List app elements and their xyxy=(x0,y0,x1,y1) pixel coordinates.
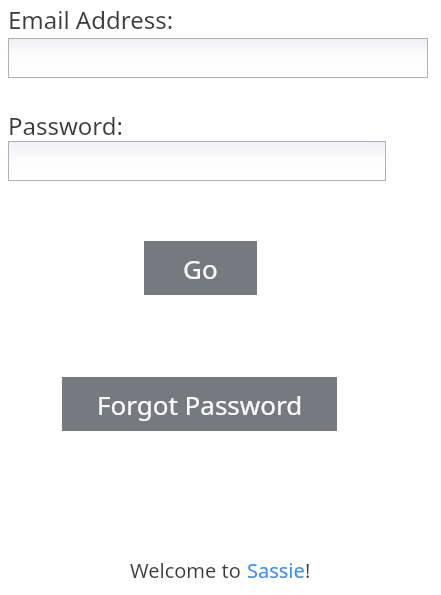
staticText: Password: xyxy=(8,109,123,142)
button[interactable]: Go xyxy=(144,241,257,295)
staticText: Forgot Password xyxy=(97,387,303,422)
button[interactable] xyxy=(8,141,386,181)
staticText: Go xyxy=(183,251,218,286)
button[interactable]: Forgot Password xyxy=(62,377,337,431)
button[interactable] xyxy=(8,38,428,78)
button[interactable]: Sassie xyxy=(247,557,305,584)
staticText: Email Address: xyxy=(8,3,174,36)
staticText: Welcome to xyxy=(130,557,247,584)
staticText: ! xyxy=(305,557,311,584)
